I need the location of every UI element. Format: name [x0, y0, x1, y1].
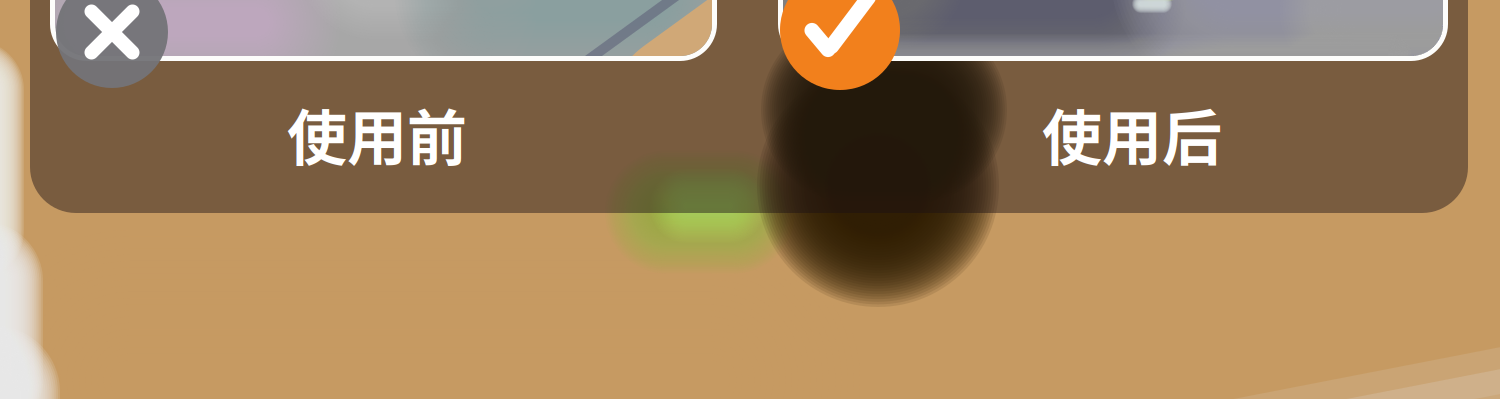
staticText: 使用后	[1042, 91, 1222, 177]
button[interactable]: Before photo	[56, 0, 168, 88]
button[interactable]: After photo	[780, 0, 900, 90]
staticText: 使用前	[287, 91, 467, 177]
